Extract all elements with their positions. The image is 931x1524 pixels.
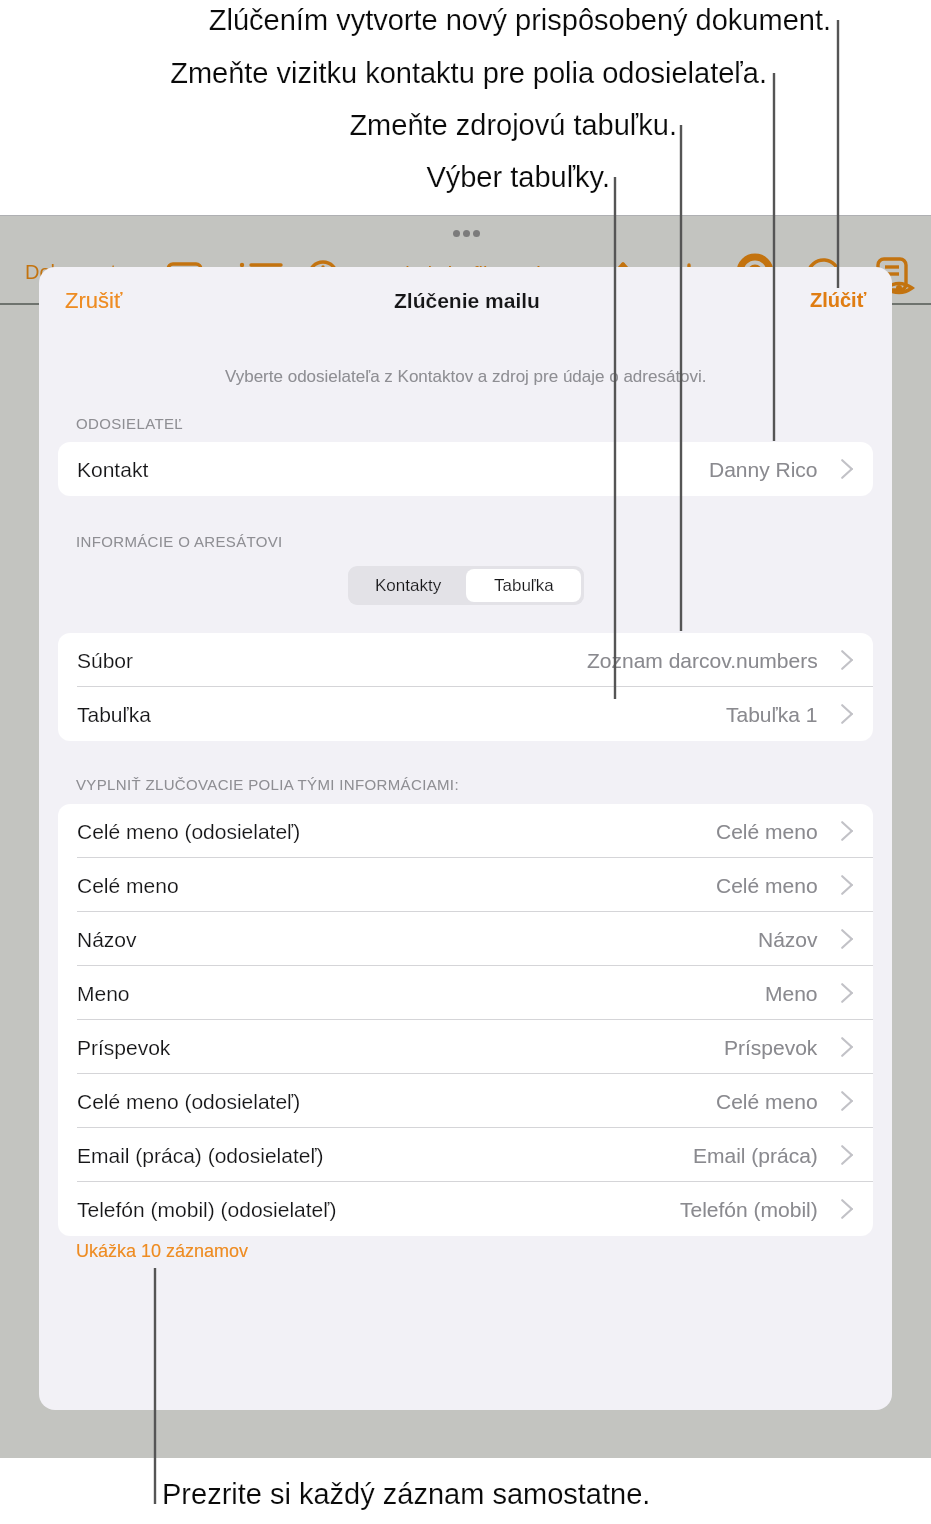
button[interactable]: Ukážka 10 záznamov [76, 1241, 249, 1261]
staticText: Názov [758, 928, 818, 951]
staticText: Celé meno (odosielateľ) [77, 820, 301, 843]
button[interactable]: Insert table [163, 252, 211, 298]
staticText: ODOSIELATEĽ [76, 415, 183, 432]
staticText: Súbor [77, 649, 134, 672]
staticText: Zlúčením vytvorte nový prispôsobený doku… [0, 4, 831, 36]
button[interactable]: Meno [58, 966, 873, 1020]
button[interactable]: Kontakt [58, 442, 873, 496]
staticText: Telefón (mobil) [680, 1198, 818, 1221]
staticText: Email (práca) [693, 1144, 818, 1167]
button[interactable]: Zlúčiť [790, 277, 892, 323]
button[interactable]: Tabuľka [58, 687, 873, 741]
staticText: Vyberte odosielateľa z Kontaktov a zdroj… [225, 367, 707, 386]
staticText: Kontakty [375, 576, 442, 595]
staticText: Tabuľka [494, 576, 554, 595]
staticText: Celé meno (odosielateľ) [77, 1090, 301, 1113]
button[interactable]: Share [608, 252, 656, 298]
button[interactable]: Príspevok [58, 1020, 873, 1074]
staticText: Email (práca) (odosielateľ) [77, 1144, 324, 1167]
button[interactable]: Celé meno [58, 858, 873, 912]
staticText: Zlúčenie mailu [394, 289, 540, 312]
staticText: Tabuľka [77, 703, 151, 726]
staticText: Príspevok [724, 1036, 818, 1059]
staticText: Zlúčiť [810, 289, 867, 311]
button[interactable]: Sort and filter [352, 252, 400, 298]
staticText: Zoznam darcov.numbers [587, 649, 818, 672]
button[interactable]: Celé meno (odosielateľ) [58, 1074, 873, 1128]
button[interactable]: Window menu [445, 222, 489, 246]
staticText: Celé meno [77, 874, 179, 897]
staticText: Tabuľka 1 [726, 703, 818, 726]
staticText: Zmeňte zdrojovú tabuľku. [0, 109, 677, 141]
staticText: Meno [765, 982, 818, 1005]
staticText: Usporiadať a filtrovať [352, 263, 540, 285]
button[interactable]: Insert text [308, 252, 356, 298]
staticText: Dokument [25, 261, 117, 283]
staticText: Prezrite si každý záznam samostatne. [162, 1478, 651, 1510]
staticText: INFORMÁCIE O ARESÁTOVI [76, 533, 283, 550]
button[interactable]: Telefón (mobil) (odosielateľ) [58, 1182, 873, 1236]
button[interactable]: View options [872, 252, 920, 298]
button[interactable]: Tabuľka [466, 569, 581, 602]
button[interactable]: Zrušiť [39, 276, 143, 325]
button[interactable]: Kontakty [351, 569, 466, 602]
button[interactable]: Document [25, 252, 73, 298]
button[interactable]: Súbor [58, 633, 873, 687]
staticText: Ukážka 10 záznamov [76, 1241, 249, 1261]
staticText: Názov [77, 928, 137, 951]
staticText: Zrušiť [65, 288, 123, 313]
staticText: Celé meno [716, 820, 818, 843]
staticText: Danny Rico [709, 458, 818, 481]
button[interactable]: Insert chart [236, 252, 284, 298]
staticText: Celé meno [716, 1090, 818, 1113]
staticText: Výber tabuľky. [0, 161, 610, 193]
staticText: Príspevok [77, 1036, 171, 1059]
staticText: Zmeňte vizitku kontaktu pre polia odosie… [0, 57, 767, 89]
staticText: Telefón (mobil) (odosielateľ) [77, 1198, 337, 1221]
staticText: Meno [77, 982, 130, 1005]
button[interactable]: Format [740, 252, 788, 298]
button[interactable]: Undo [805, 252, 853, 298]
staticText: VYPLNIŤ ZLUČOVACIE POLIA TÝMI INFORMÁCIA… [76, 776, 459, 793]
staticText: Celé meno [716, 874, 818, 897]
button[interactable]: Názov [58, 912, 873, 966]
button[interactable]: Celé meno (odosielateľ) [58, 804, 873, 858]
button[interactable]: Email (práca) (odosielateľ) [58, 1128, 873, 1182]
button[interactable]: Insert [674, 252, 722, 298]
staticText: Kontakt [77, 458, 149, 481]
